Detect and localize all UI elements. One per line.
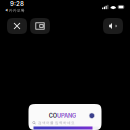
- staticText: 카카오톡: [9, 8, 25, 13]
- staticText: 9:28: [10, 0, 24, 8]
- staticText: 검색어를 입력하세요: [38, 121, 75, 125]
- button[interactable]: Mute: [103, 18, 123, 34]
- button[interactable]: Close ad: [7, 18, 27, 34]
- button[interactable]: Picture in picture: [30, 18, 50, 34]
- staticText: UPANG: [57, 112, 76, 119]
- staticText: ◀: [5, 9, 8, 12]
- staticText: CO: [49, 112, 57, 119]
